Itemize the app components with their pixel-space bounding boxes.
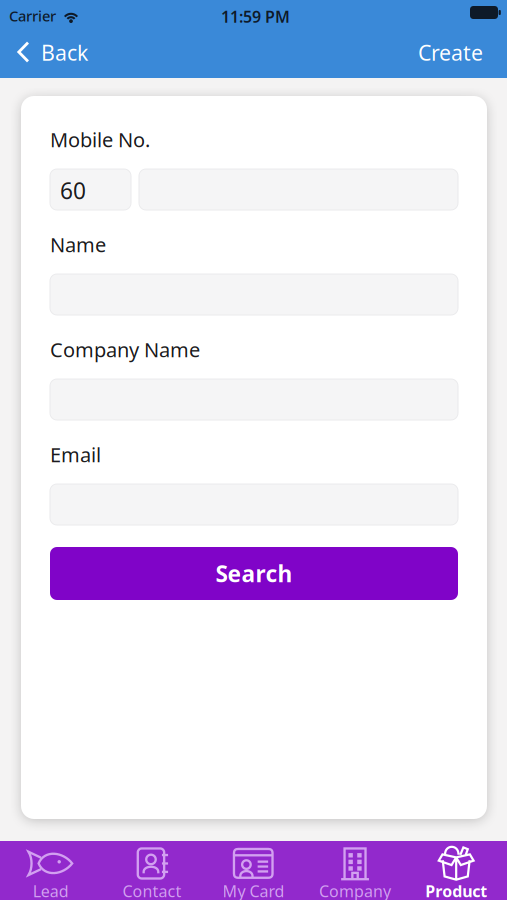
staticText: Back: [41, 38, 88, 67]
staticText: 11:59 PM: [221, 6, 290, 27]
button[interactable]: Back: [0, 27, 102, 78]
staticText: My Card: [222, 880, 284, 900]
staticText: Mobile No.: [50, 126, 150, 153]
button[interactable]: My Card: [203, 841, 304, 900]
staticText: Carrier: [9, 6, 56, 25]
button[interactable]: Product: [406, 841, 507, 900]
button[interactable]: Lead: [0, 841, 101, 900]
staticText: Email: [50, 441, 101, 468]
staticText: 60: [60, 175, 86, 205]
button[interactable]: Company: [304, 841, 406, 900]
staticText: Contact: [123, 880, 182, 900]
staticText: Name: [50, 231, 106, 258]
button[interactable]: Create: [398, 27, 507, 78]
staticText: Company: [319, 880, 391, 900]
staticText: Product: [425, 880, 487, 900]
staticText: Search: [215, 558, 292, 588]
staticText: Company Name: [50, 336, 200, 363]
staticText: Create: [418, 38, 483, 67]
button[interactable]: Contact: [101, 841, 203, 900]
button[interactable]: Search: [50, 547, 458, 600]
staticText: Lead: [33, 880, 69, 900]
